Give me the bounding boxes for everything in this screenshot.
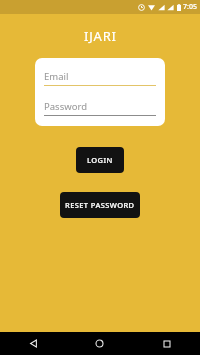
button[interactable]: Email: [44, 68, 156, 86]
staticText: LOGIN: [87, 155, 113, 165]
button[interactable]: RESET PASSWORD: [60, 192, 140, 218]
button[interactable]: Home: [66, 332, 133, 355]
staticText: IJARI: [84, 27, 117, 45]
staticText: Email: [44, 70, 69, 83]
button[interactable]: LOGIN: [76, 147, 124, 173]
button[interactable]: Back: [0, 332, 66, 355]
staticText: 7:05: [183, 2, 197, 12]
button[interactable]: Recent apps: [133, 332, 200, 355]
staticText: Password: [44, 100, 87, 113]
staticText: RESET PASSWORD: [65, 200, 135, 210]
button[interactable]: Password: [44, 98, 156, 116]
